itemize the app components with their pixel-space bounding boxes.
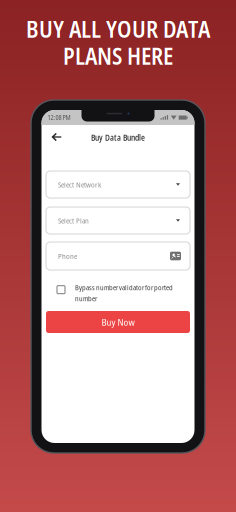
staticText: Buy Data Bundle <box>91 132 145 143</box>
button[interactable]: Select Plan <box>46 207 190 234</box>
staticText: Bypass number validator for ported <box>75 283 173 292</box>
button[interactable]: Phone <box>46 242 190 270</box>
staticText: Phone <box>58 251 77 261</box>
button[interactable]: Select Network <box>46 171 190 198</box>
staticText: Buy Now <box>101 315 134 329</box>
staticText: number <box>75 294 97 303</box>
staticText: Select Network <box>58 179 101 190</box>
button[interactable]: Back <box>46 127 66 147</box>
staticText: Select Plan <box>58 215 89 226</box>
staticText: 12:08 PM <box>47 113 70 122</box>
button[interactable]: Buy Now <box>46 311 190 333</box>
staticText: BUY ALL YOUR DATA <box>26 14 210 44</box>
button[interactable]: Bypass number validator for ported <box>46 284 190 302</box>
staticText: PLANS HERE <box>63 41 173 71</box>
